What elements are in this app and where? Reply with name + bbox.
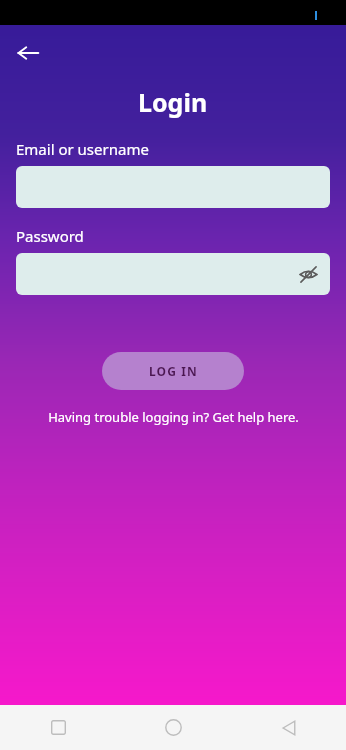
staticText: Having trouble logging in? Get help here… [48,408,299,426]
button[interactable]: Having trouble logging in? Get help here… [0,408,346,426]
button[interactable]: Recent apps [0,705,116,750]
button[interactable] [16,166,330,208]
staticText: LOG IN [149,363,198,379]
staticText: Email or username [16,139,149,159]
staticText: Password [16,226,84,246]
staticText: Login [138,85,208,119]
button[interactable]: Back [231,705,346,750]
button[interactable]: Back [0,25,56,81]
button[interactable]: Home [116,705,231,750]
button[interactable]: Show password [292,258,324,290]
button[interactable]: LOG IN [102,352,244,390]
button[interactable]: Show password [16,253,330,295]
